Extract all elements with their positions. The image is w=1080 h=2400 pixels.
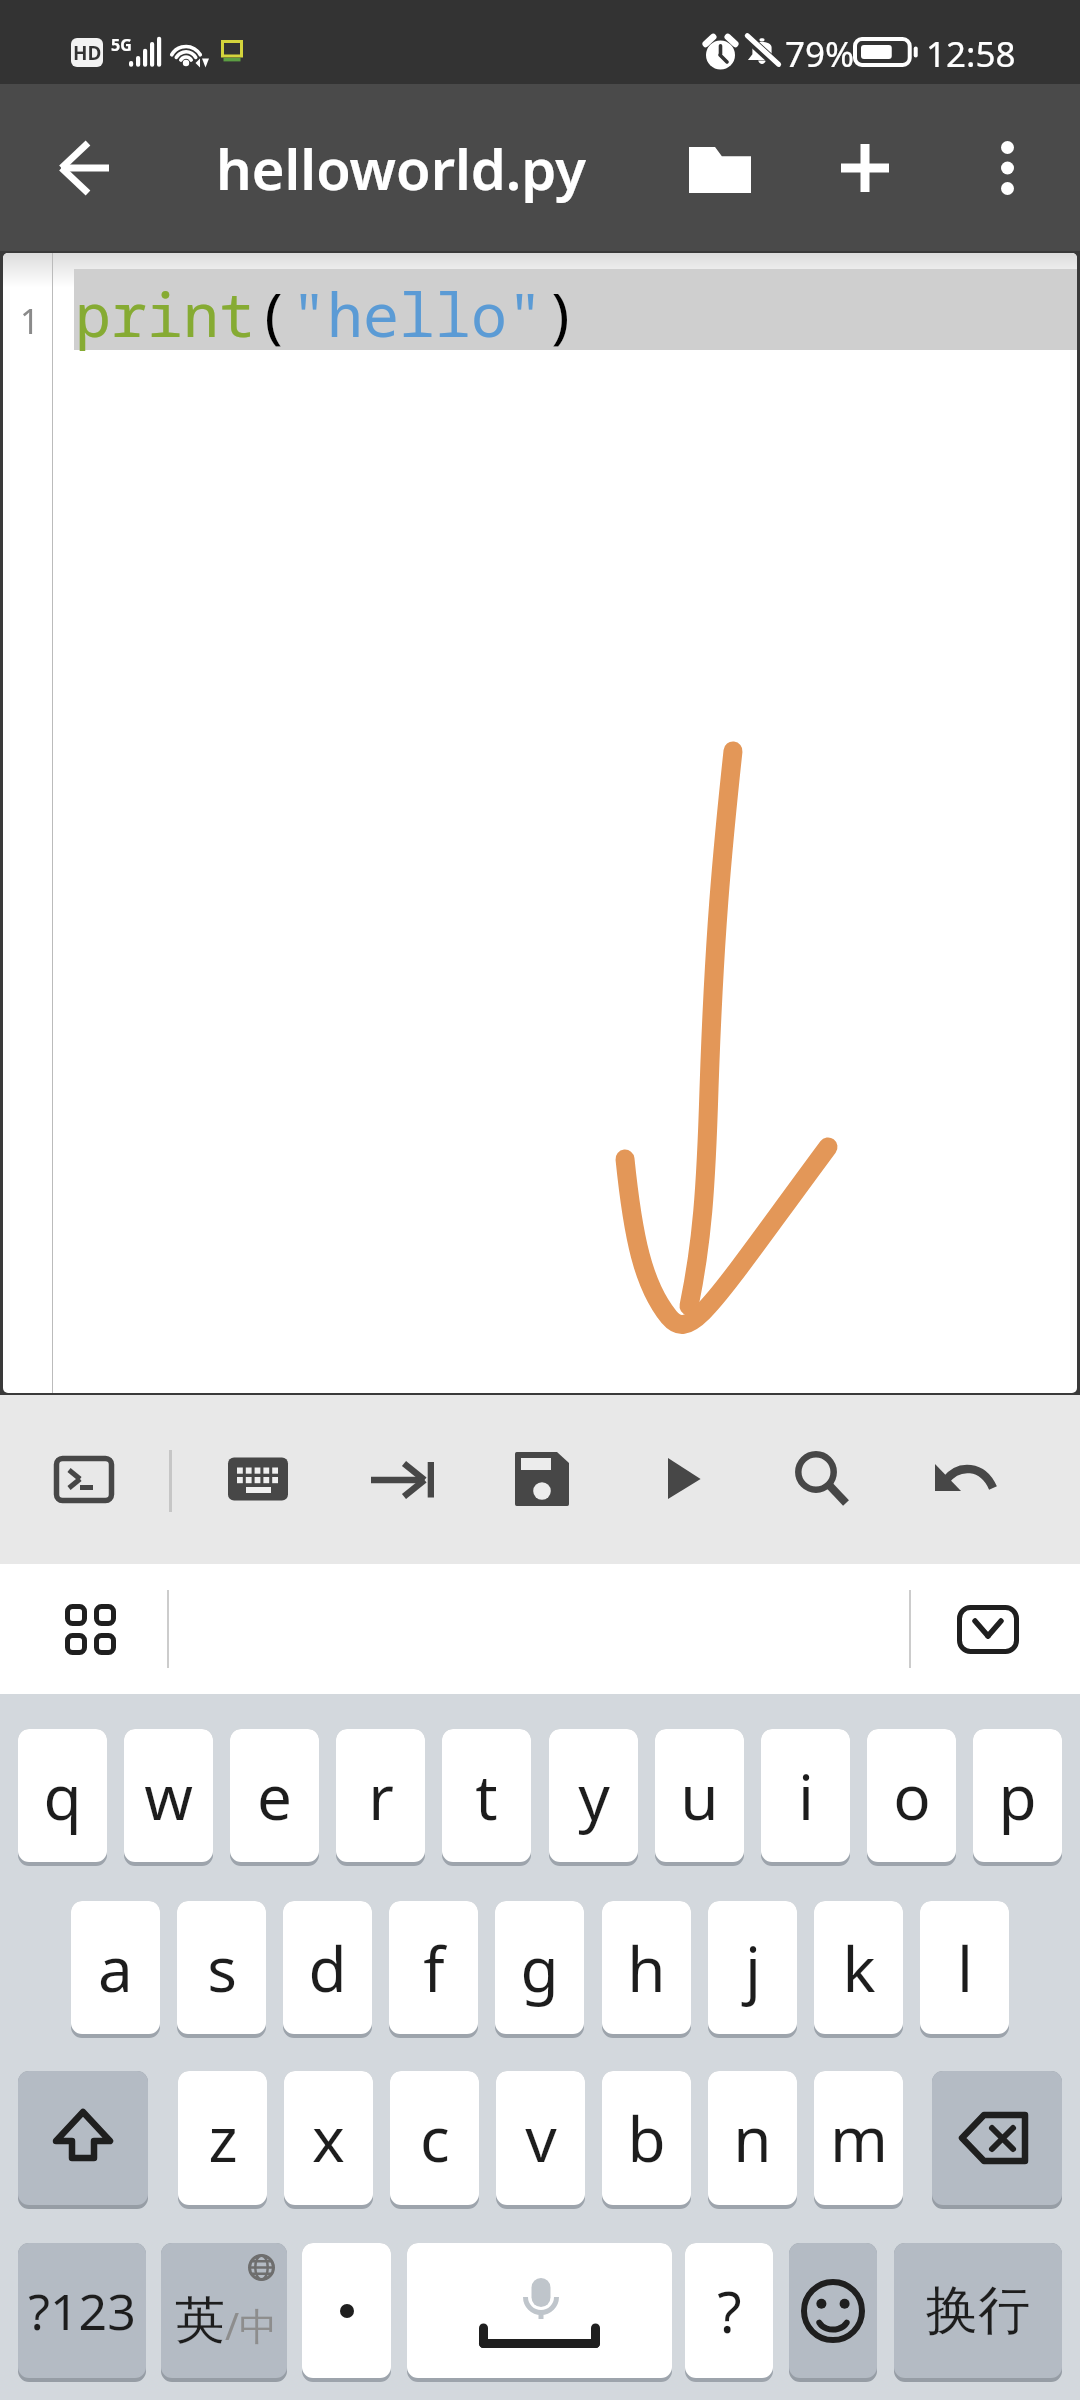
- button[interactable]: Undo: [914, 1431, 1018, 1527]
- button[interactable]: q: [18, 1729, 107, 1862]
- button[interactable]: Search: [766, 1431, 870, 1527]
- staticText: k: [842, 1926, 876, 2010]
- button[interactable]: m: [814, 2071, 903, 2205]
- button[interactable]: a: [71, 1901, 160, 2034]
- button[interactable]: r: [336, 1729, 425, 1862]
- button[interactable]: emoji: [789, 2243, 877, 2378]
- button[interactable]: ?: [685, 2243, 773, 2378]
- button[interactable]: Open folder: [673, 121, 767, 215]
- staticText: y: [578, 1754, 610, 1838]
- staticText: r: [368, 1754, 394, 1838]
- button[interactable]: s: [177, 1901, 266, 2034]
- button[interactable]: 换行: [894, 2243, 1062, 2378]
- staticText: s: [207, 1926, 237, 2010]
- staticText: HD: [73, 40, 102, 66]
- button[interactable]: e: [230, 1729, 319, 1862]
- staticText: 79%: [785, 30, 855, 78]
- button[interactable]: dot: [302, 2243, 391, 2378]
- button[interactable]: Symbols: [40, 1581, 140, 1677]
- staticText: v: [525, 2096, 557, 2180]
- staticText: ): [543, 273, 579, 355]
- button[interactable]: Terminal: [32, 1431, 136, 1527]
- staticText: c: [420, 2096, 450, 2180]
- button[interactable]: More options: [960, 121, 1054, 215]
- staticText: j: [745, 1926, 761, 2010]
- button[interactable]: ?123: [18, 2243, 146, 2378]
- button[interactable]: t: [442, 1729, 531, 1862]
- staticText: b: [627, 2096, 666, 2180]
- button[interactable]: lang: [161, 2243, 287, 2378]
- staticText: w: [144, 1754, 193, 1838]
- button[interactable]: Hide keyboard: [937, 1579, 1039, 1679]
- staticText: /中: [225, 2299, 278, 2351]
- staticText: t: [475, 1754, 498, 1838]
- staticText: (: [255, 273, 291, 355]
- staticText: "hello": [291, 273, 543, 355]
- button[interactable]: d: [283, 1901, 372, 2034]
- button[interactable]: Save: [490, 1431, 594, 1527]
- button[interactable]: z: [178, 2071, 267, 2205]
- button[interactable]: b: [602, 2071, 691, 2205]
- staticText: 5G: [111, 34, 132, 56]
- staticText: z: [208, 2096, 238, 2180]
- button[interactable]: shift: [18, 2071, 148, 2205]
- button[interactable]: Indent: [350, 1431, 454, 1527]
- button[interactable]: o: [867, 1729, 956, 1862]
- button[interactable]: New file: [818, 121, 912, 215]
- staticText: a: [98, 1926, 133, 2010]
- staticText: m: [830, 2096, 888, 2180]
- staticText: e: [257, 1754, 292, 1838]
- button[interactable]: Keyboard: [206, 1431, 310, 1527]
- button[interactable]: backspace: [932, 2071, 1062, 2205]
- button[interactable]: space: [407, 2243, 672, 2378]
- button[interactable]: l: [920, 1901, 1009, 2034]
- staticText: p: [998, 1754, 1037, 1838]
- button[interactable]: Run: [632, 1431, 736, 1527]
- button[interactable]: j: [708, 1901, 797, 2034]
- button[interactable]: Back: [37, 121, 131, 215]
- button[interactable]: c: [390, 2071, 479, 2205]
- button[interactable]: v: [496, 2071, 585, 2205]
- staticText: ?123: [28, 2277, 136, 2345]
- button[interactable]: x: [284, 2071, 373, 2205]
- staticText: o: [893, 1754, 931, 1838]
- staticText: 1: [20, 298, 40, 344]
- button[interactable]: p: [973, 1729, 1062, 1862]
- staticText: print: [75, 273, 255, 355]
- button[interactable]: w: [124, 1729, 213, 1862]
- button[interactable]: g: [495, 1901, 584, 2034]
- staticText: n: [733, 2096, 772, 2180]
- staticText: q: [43, 1754, 82, 1838]
- button[interactable]: n: [708, 2071, 797, 2205]
- staticText: 12:58: [926, 30, 1016, 78]
- button[interactable]: f: [389, 1901, 478, 2034]
- staticText: x: [312, 2096, 345, 2180]
- staticText: u: [680, 1754, 719, 1838]
- staticText: ?: [717, 2273, 742, 2349]
- staticText: i: [798, 1754, 814, 1838]
- staticText: 英: [175, 2289, 225, 2352]
- staticText: f: [423, 1926, 445, 2010]
- button[interactable]: k: [814, 1901, 903, 2034]
- staticText: d: [308, 1926, 347, 2010]
- button[interactable]: h: [602, 1901, 691, 2034]
- button[interactable]: i: [761, 1729, 850, 1862]
- staticText: helloworld.py: [216, 130, 586, 206]
- staticText: h: [627, 1926, 666, 2010]
- button[interactable]: y: [549, 1729, 638, 1862]
- staticText: g: [520, 1926, 559, 2010]
- staticText: l: [957, 1926, 973, 2010]
- staticText: 换行: [926, 2278, 1030, 2344]
- button[interactable]: u: [655, 1729, 744, 1862]
